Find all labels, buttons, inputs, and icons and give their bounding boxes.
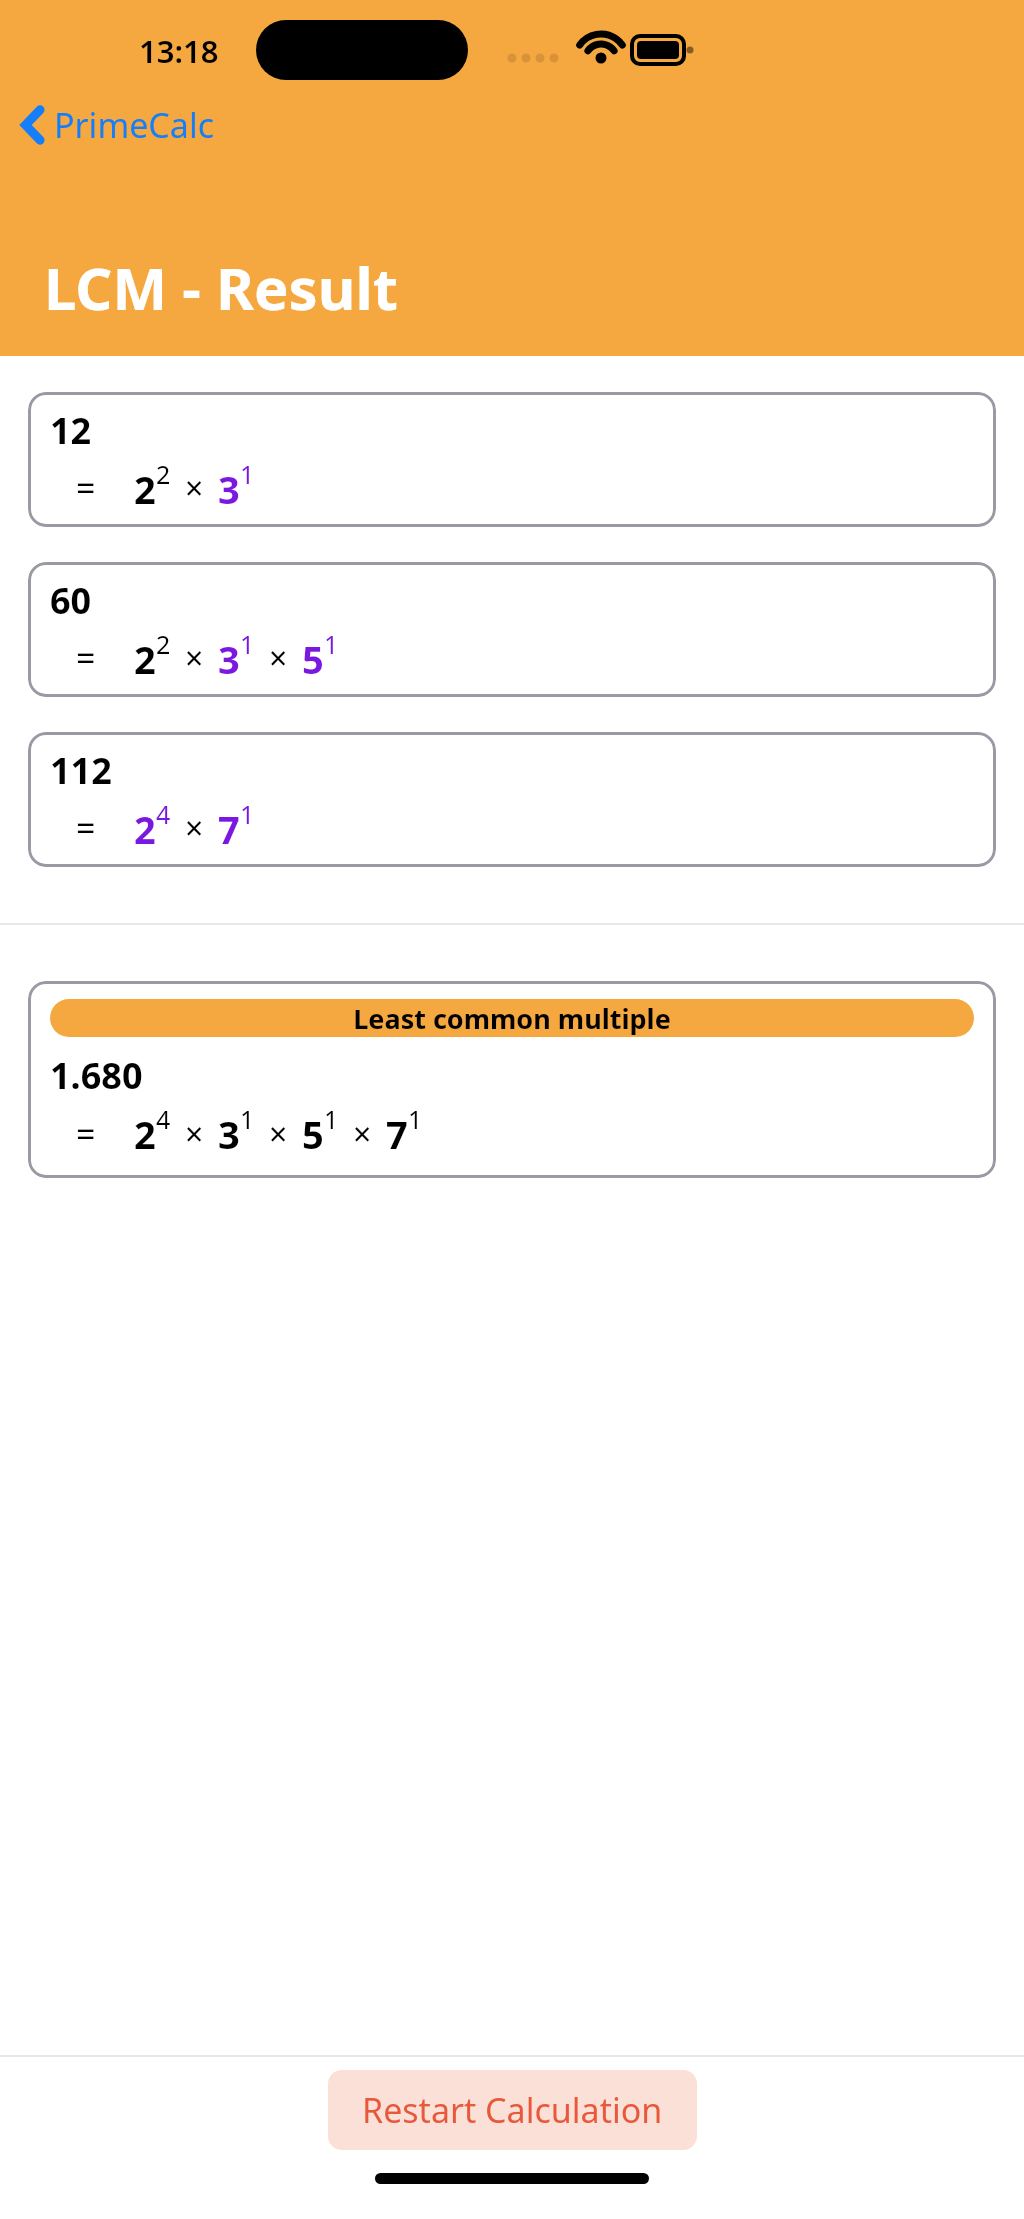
staticText: 5 <box>302 633 324 683</box>
staticText: 4 <box>156 1102 171 1136</box>
button[interactable]: 60 <box>28 562 996 697</box>
staticText: 2 <box>156 627 171 661</box>
button[interactable]: Least common multiple <box>28 981 996 1178</box>
staticText: × <box>185 1112 204 1156</box>
staticText: 1.680 <box>50 1051 143 1100</box>
staticText: × <box>185 636 204 680</box>
staticText: = <box>76 1111 96 1157</box>
staticText: 5 <box>302 1108 324 1160</box>
staticText: 2 <box>134 463 156 513</box>
staticText: 2 <box>134 1108 156 1160</box>
staticText: 3 <box>218 1108 240 1160</box>
staticText: 7 <box>386 1108 408 1160</box>
button[interactable]: 12 <box>28 392 996 527</box>
staticText: 2 <box>134 803 156 853</box>
button[interactable]: Restart Calculation <box>328 2070 697 2150</box>
staticText: × <box>185 466 204 510</box>
staticText: 112 <box>50 746 112 795</box>
staticText: × <box>269 1112 288 1156</box>
staticText: 3 <box>218 633 240 683</box>
staticText: 12 <box>50 406 92 455</box>
staticText: 2 <box>134 633 156 683</box>
staticText: × <box>269 636 288 680</box>
button[interactable]: 112 <box>28 732 996 867</box>
staticText: 1 <box>240 1102 255 1136</box>
staticText: 13:18 <box>139 30 219 72</box>
staticText: 1 <box>408 1102 423 1136</box>
staticText: PrimeCalc <box>54 102 215 148</box>
staticText: = <box>76 635 96 681</box>
staticText: 1 <box>240 627 255 661</box>
staticText: 3 <box>218 463 240 513</box>
staticText: 1 <box>324 627 339 661</box>
staticText: × <box>185 806 204 850</box>
staticText: 2 <box>156 457 171 491</box>
staticText: 7 <box>218 803 240 853</box>
staticText: 1 <box>324 1102 339 1136</box>
staticText: 1 <box>240 797 255 831</box>
staticText: 60 <box>50 576 92 625</box>
staticText: 1 <box>240 457 255 491</box>
staticText: LCM - Result <box>44 248 398 327</box>
staticText: 4 <box>156 797 171 831</box>
staticText: = <box>76 805 96 851</box>
button[interactable]: PrimeCalc <box>14 96 223 154</box>
staticText: Least common multiple <box>353 1000 671 1037</box>
staticText: = <box>76 465 96 511</box>
staticText: Restart Calculation <box>362 2087 663 2133</box>
staticText: × <box>353 1112 372 1156</box>
